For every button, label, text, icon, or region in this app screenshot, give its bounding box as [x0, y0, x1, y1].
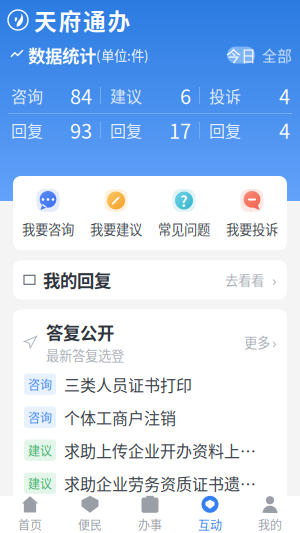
- staticText: 数据统计: [28, 42, 96, 68]
- staticText: 建议: [28, 441, 52, 459]
- button[interactable]: 我的: [240, 496, 300, 533]
- staticText: 93: [70, 115, 92, 144]
- staticText: 我要咨询: [22, 219, 74, 238]
- staticText: 天府通办: [34, 4, 130, 36]
- staticText: 回复: [110, 118, 142, 142]
- staticText: 我要建议: [90, 219, 142, 238]
- button[interactable]: 今日: [227, 46, 255, 63]
- staticText: 建议: [28, 474, 52, 492]
- staticText: ?: [180, 190, 188, 211]
- staticText: 求助企业劳务资质证书遗失补办申…: [64, 505, 268, 528]
- staticText: 今日: [226, 44, 256, 66]
- button[interactable]: 建议: [24, 500, 276, 533]
- staticText: 投诉: [209, 84, 241, 107]
- button[interactable]: 全部: [255, 46, 290, 63]
- staticText: 互动: [198, 516, 222, 533]
- staticText: 全部: [262, 44, 292, 66]
- button[interactable]: 便民: [60, 496, 120, 533]
- staticText: ›: [272, 269, 276, 290]
- staticText: 我要投诉: [226, 219, 278, 238]
- staticText: 首页: [18, 516, 42, 533]
- button[interactable]: 咨询: [24, 368, 276, 401]
- staticText: 求助上传企业开办资料上传不成功…: [64, 439, 268, 462]
- staticText: 办事: [138, 516, 162, 533]
- staticText: 更多: [244, 332, 270, 352]
- staticText: (单位:件): [96, 45, 149, 65]
- button[interactable]: 我要咨询: [14, 189, 82, 238]
- button[interactable]: 更多: [244, 331, 276, 353]
- staticText: 84: [70, 81, 92, 110]
- button[interactable]: 建议: [24, 434, 276, 467]
- button[interactable]: 我要投诉: [218, 189, 286, 238]
- staticText: 去看看: [225, 270, 264, 289]
- staticText: 答复公开: [46, 319, 114, 344]
- staticText: 回复: [11, 118, 43, 142]
- button[interactable]: 我要建议: [82, 189, 150, 238]
- staticText: 三类人员证书打印: [64, 373, 192, 396]
- button[interactable]: ?: [150, 189, 218, 238]
- staticText: 最新答复选登: [46, 345, 124, 365]
- button[interactable]: 首页: [0, 496, 60, 533]
- staticText: 建议: [28, 507, 52, 525]
- button[interactable]: 我的回复: [13, 260, 287, 299]
- staticText: 求助企业劳务资质证书遗失补办申…: [64, 472, 268, 495]
- staticText: 4: [279, 81, 290, 110]
- staticText: 我的: [258, 516, 282, 533]
- staticText: 回复: [209, 118, 241, 142]
- staticText: ›: [272, 331, 276, 353]
- button[interactable]: 咨询: [24, 401, 276, 434]
- staticText: 咨询: [28, 408, 52, 426]
- staticText: 6: [180, 81, 191, 110]
- staticText: 咨询: [28, 375, 52, 393]
- staticText: 便民: [78, 516, 102, 533]
- staticText: 17: [169, 115, 191, 144]
- staticText: 咨询: [11, 84, 43, 107]
- button[interactable]: 办事: [120, 496, 180, 533]
- staticText: 常见问题: [158, 219, 210, 238]
- staticText: 4: [279, 115, 290, 144]
- staticText: 个体工商户注销: [64, 406, 176, 429]
- button[interactable]: 互动: [180, 496, 240, 533]
- staticText: 我的回复: [43, 267, 111, 292]
- staticText: 建议: [110, 84, 142, 107]
- button[interactable]: 建议: [24, 467, 276, 500]
